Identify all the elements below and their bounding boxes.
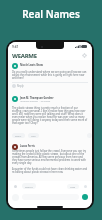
staticText: 9:41	[12, 45, 19, 49]
button[interactable]: Lucas Ferris	[12, 144, 35, 150]
button[interactable]: Settings	[81, 52, 88, 59]
button[interactable]: Reply	[12, 133, 25, 138]
staticText: Reply	[15, 134, 22, 137]
button[interactable]: Real Names	[0, 0, 102, 32]
button[interactable]: Reply	[12, 84, 24, 88]
button[interactable]: Send	[82, 194, 88, 200]
staticText: WEARME	[12, 52, 37, 60]
staticText: Yesterday evening · via Phone	[20, 100, 51, 103]
button[interactable]: Jean M. Thompson Gardner	[12, 96, 54, 103]
staticText: Sometimes people just follow the crowd. …	[12, 149, 88, 164]
button[interactable]: Report	[22, 183, 36, 189]
button[interactable]: Like	[12, 183, 18, 189]
staticText: Real Names	[22, 7, 80, 21]
button[interactable]: Like	[28, 133, 39, 138]
staticText: Like	[31, 134, 36, 137]
button[interactable]: More	[83, 184, 88, 189]
staticText: Hide	[70, 185, 76, 188]
staticText: Reply	[17, 84, 24, 88]
staticText: A quarter of the funds could not have cl…	[12, 167, 88, 173]
button[interactable]: Nicole Lewis Shaw	[12, 63, 43, 69]
button[interactable]: Add attachment	[12, 194, 19, 201]
staticText: Lucas Ferris	[20, 144, 35, 147]
staticText: The plastic straws thing is pretty much …	[12, 106, 88, 124]
staticText: Do you really understand where we are go…	[12, 70, 88, 79]
staticText: Nicole Lewis Shaw	[20, 63, 43, 66]
staticText: Report	[25, 185, 33, 188]
staticText: Jean M. Thompson Gardner	[20, 96, 54, 99]
button[interactable]: Hide	[67, 184, 79, 189]
